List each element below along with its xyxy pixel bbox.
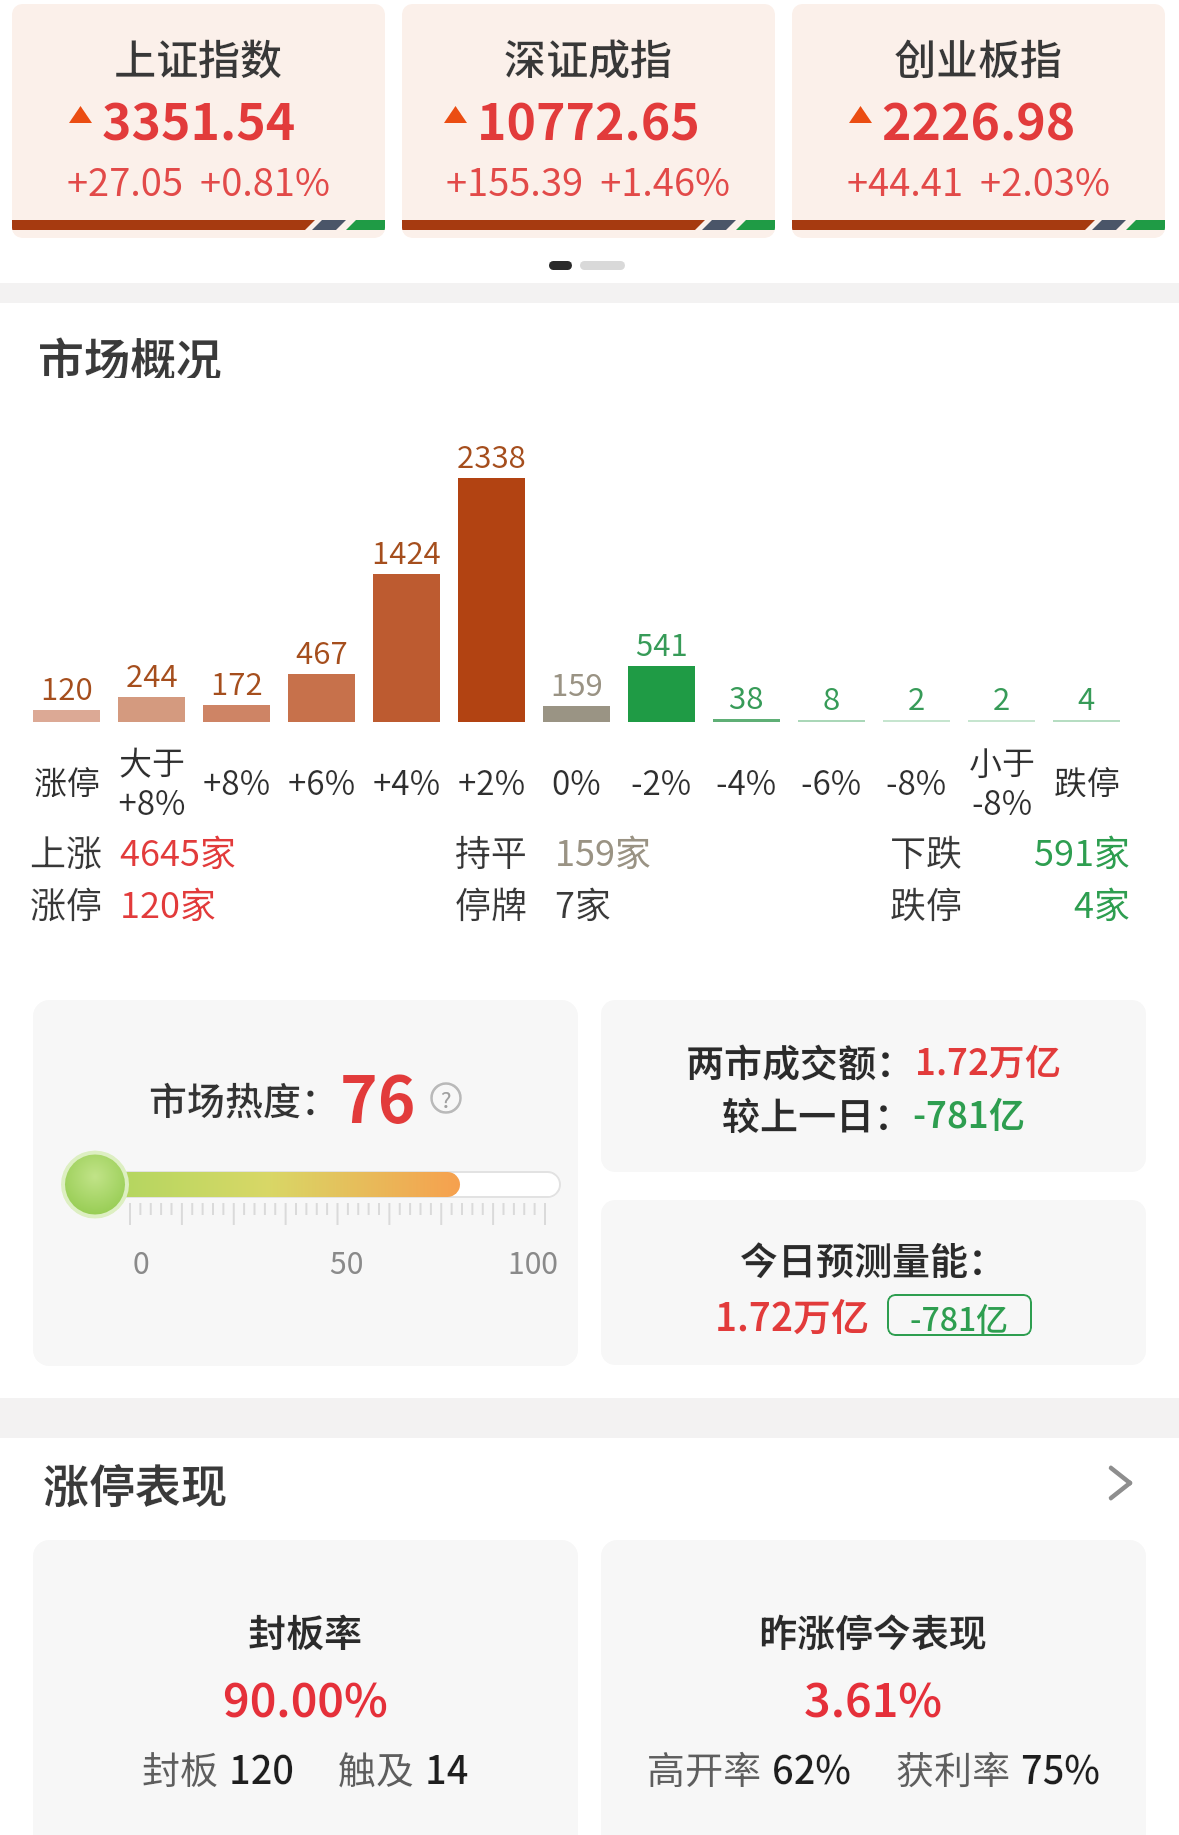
- staticText: 120: [229, 1740, 294, 1792]
- staticText: 上涨: [30, 824, 103, 874]
- button[interactable]: 深证成指: [402, 4, 775, 238]
- staticText: 4家: [1074, 876, 1130, 926]
- staticText: 持平: [455, 824, 528, 874]
- staticText: ?: [441, 1082, 452, 1114]
- staticText: 75%: [1021, 1740, 1101, 1792]
- staticText: +44.41 +2.03%: [847, 152, 1110, 200]
- staticText: 涨停: [30, 876, 103, 926]
- staticText: 100: [508, 1239, 558, 1282]
- staticText: 上证指数: [114, 26, 283, 87]
- staticText: -4%: [716, 757, 777, 797]
- staticText: 市场热度：: [149, 1071, 340, 1126]
- staticText: 跌停: [1054, 757, 1120, 797]
- button[interactable]: 市场热度：: [33, 1000, 578, 1366]
- button[interactable]: 涨停表现: [0, 1450, 1179, 1516]
- staticText: 获利率: [896, 1740, 1011, 1792]
- staticText: -2%: [631, 757, 692, 797]
- staticText: 10772.65: [477, 82, 700, 146]
- button[interactable]: 封板率: [33, 1540, 578, 1835]
- staticText: -8%: [886, 757, 947, 797]
- staticText: 4: [1078, 674, 1096, 712]
- staticText: 触及: [338, 1740, 415, 1792]
- button[interactable]: 昨涨停今表现: [601, 1540, 1146, 1835]
- staticText: 120: [41, 664, 93, 702]
- staticText: 3351.54: [102, 82, 296, 146]
- staticText: +4%: [373, 757, 441, 797]
- staticText: 7家: [555, 876, 611, 926]
- staticText: 3.61%: [804, 1664, 943, 1722]
- staticText: 封板: [142, 1740, 219, 1792]
- staticText: -781亿: [913, 1086, 1025, 1138]
- staticText: 昨涨停今表现: [759, 1603, 988, 1655]
- staticText: 停牌: [455, 876, 528, 926]
- staticText: 涨停: [34, 757, 100, 797]
- button[interactable]: 上证指数: [12, 4, 385, 238]
- staticText: 244: [126, 651, 178, 689]
- staticText: 涨停表现: [43, 1450, 227, 1516]
- staticText: +155.39 +1.46%: [446, 152, 731, 200]
- staticText: 1424: [372, 528, 441, 566]
- button[interactable]: 创业板指: [792, 4, 1165, 238]
- staticText: 封板率: [248, 1603, 363, 1655]
- staticText: 38: [729, 673, 764, 711]
- staticText: 2226.98: [882, 82, 1076, 146]
- staticText: 2338: [457, 432, 526, 470]
- staticText: 0: [133, 1239, 150, 1282]
- staticText: +27.05 +0.81%: [67, 152, 330, 200]
- staticText: 深证成指: [504, 26, 673, 87]
- staticText: 591家: [1034, 824, 1130, 874]
- staticText: 76: [340, 1049, 416, 1129]
- staticText: 4645家: [120, 824, 236, 874]
- staticText: 172: [211, 659, 263, 697]
- staticText: 159家: [555, 824, 651, 874]
- staticText: 50: [330, 1239, 364, 1282]
- staticText: +8%: [203, 757, 271, 797]
- staticText: +2%: [458, 757, 526, 797]
- staticText: 120家: [120, 876, 216, 926]
- staticText: -6%: [801, 757, 862, 797]
- staticText: 62%: [772, 1740, 852, 1792]
- staticText: 467: [296, 628, 348, 666]
- button[interactable]: 两市成交额：: [601, 1000, 1146, 1172]
- staticText: 0%: [552, 757, 601, 797]
- staticText: 市场概况: [38, 324, 222, 378]
- staticText: 跌停: [890, 876, 963, 926]
- button[interactable]: 今日预测量能：: [601, 1200, 1146, 1365]
- staticText: 高开率: [647, 1740, 762, 1792]
- staticText: +6%: [288, 757, 356, 797]
- staticText: 90.00%: [223, 1664, 388, 1722]
- staticText: 大于 +8%: [118, 737, 186, 817]
- staticText: 今日预测量能：: [740, 1231, 1007, 1283]
- staticText: 14: [425, 1740, 469, 1792]
- staticText: 下跌: [890, 824, 963, 874]
- staticText: 小于 -8%: [969, 737, 1035, 817]
- staticText: 1.72万亿: [715, 1287, 869, 1342]
- staticText: 541: [636, 620, 688, 658]
- staticText: 1.72万亿: [915, 1033, 1061, 1085]
- staticText: 8: [823, 674, 841, 712]
- staticText: 创业板指: [894, 26, 1063, 87]
- staticText: -781亿: [910, 1294, 1009, 1336]
- staticText: 2: [993, 674, 1011, 712]
- staticText: 2: [908, 674, 926, 712]
- staticText: 两市成交额：: [686, 1033, 915, 1085]
- staticText: 159: [551, 660, 603, 698]
- staticText: 较上一日：: [722, 1086, 913, 1138]
